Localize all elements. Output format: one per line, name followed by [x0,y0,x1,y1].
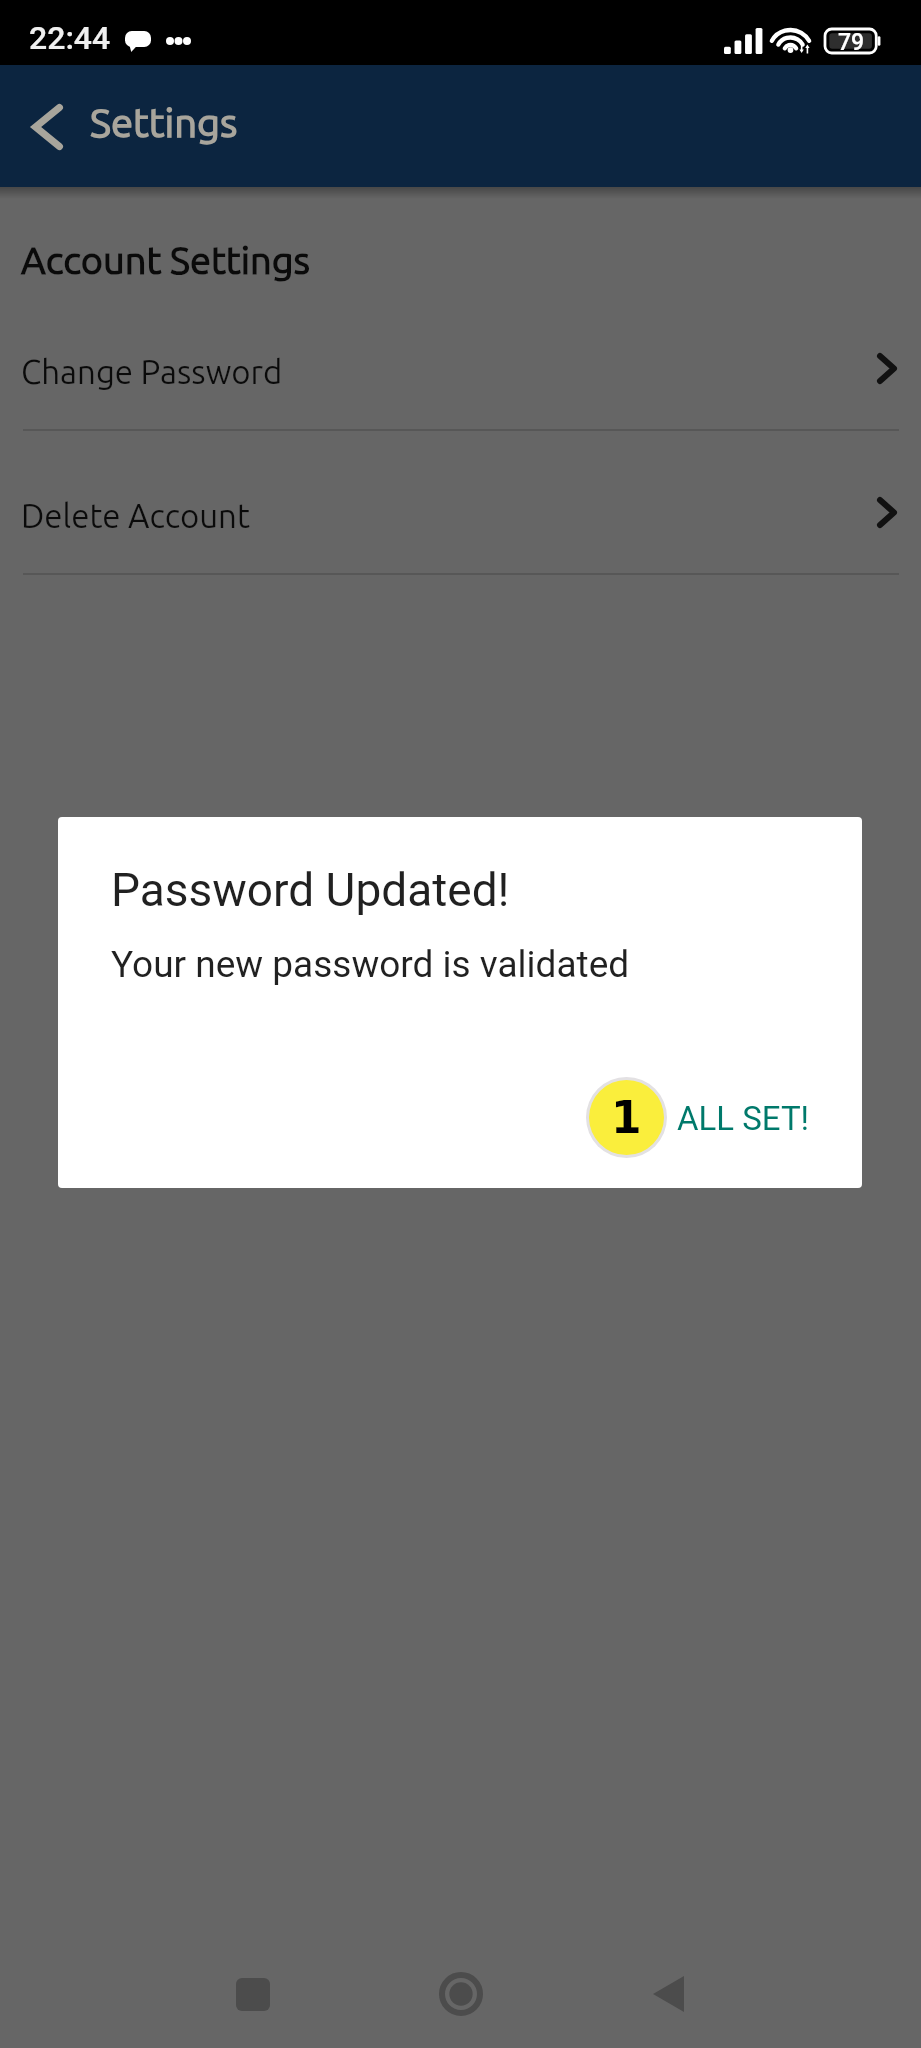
staticText: Account Settings [21,239,311,282]
button[interactable]: Back [600,1937,734,2048]
staticText: Change Password [21,353,283,390]
staticText: 22:44 [29,19,111,57]
button[interactable]: Back [12,86,82,168]
staticText: Delete Account [21,497,250,534]
button[interactable]: Change Password [0,288,921,431]
button[interactable]: Delete Account [0,432,921,575]
staticText: Settings [90,100,238,145]
staticText: Password Updated! [111,863,510,917]
staticText: Your new password is validated [111,943,630,986]
staticText: 79 [838,29,865,53]
button[interactable]: 1 [576,1067,822,1168]
staticText: 1 [611,1092,642,1143]
button[interactable]: Recents [186,1937,320,2048]
button[interactable]: Home [394,1937,528,2048]
staticText: ALL SET! [677,1099,810,1138]
